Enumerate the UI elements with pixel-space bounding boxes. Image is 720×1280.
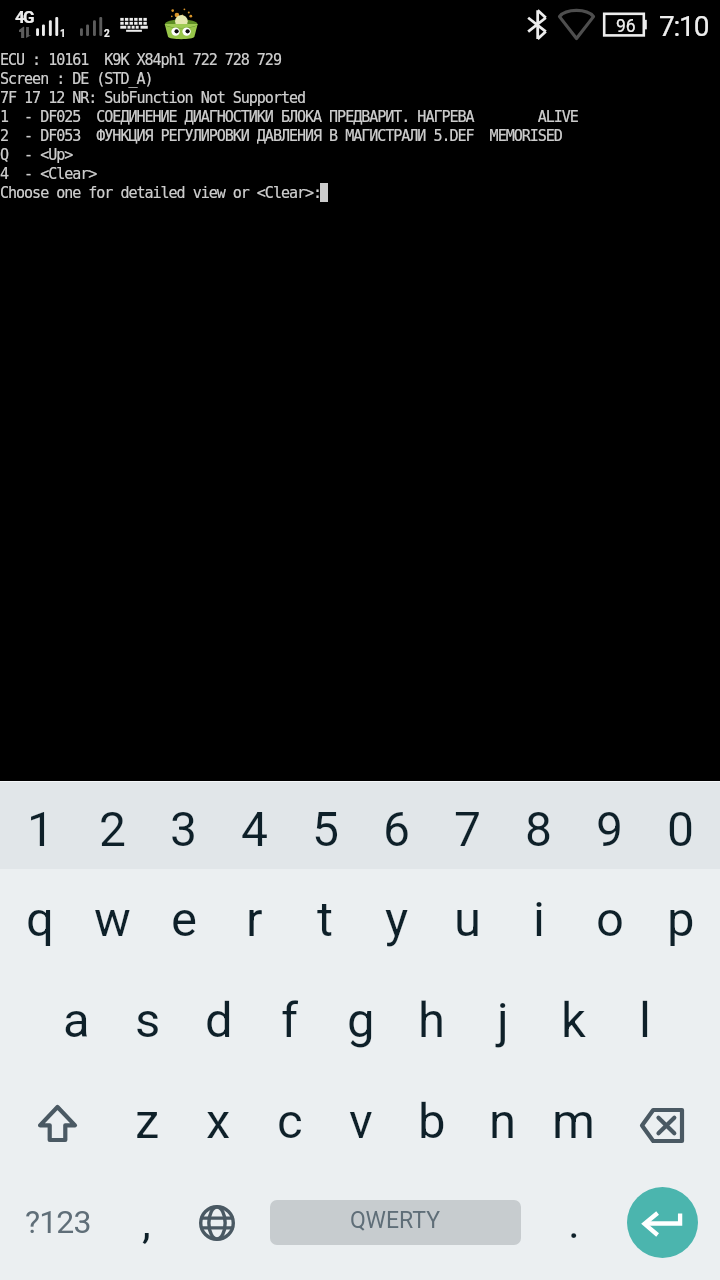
button[interactable]: Change language [182, 1172, 253, 1272]
button[interactable]: 8 [503, 782, 574, 869]
button[interactable]: t [290, 869, 361, 970]
staticText: w [94, 891, 131, 948]
staticText: 2 - DF053 ФУНКЦИЯ РЕГУЛИРОВКИ ДАВЛЕНИЯ В… [0, 127, 562, 145]
staticText: v [349, 1093, 373, 1150]
staticText: 2 [104, 28, 110, 40]
staticText: r [246, 891, 263, 948]
staticText: 8 [525, 801, 552, 857]
staticText: 6 [383, 801, 410, 857]
button[interactable]: . [538, 1172, 609, 1272]
button[interactable]: n [467, 1071, 538, 1172]
button[interactable]: h [396, 970, 467, 1071]
button[interactable]: Enter [609, 1172, 716, 1272]
staticText: ECU : 10161 K9K X84ph1 722 728 729 [0, 51, 281, 69]
staticText: 1 [60, 28, 66, 40]
staticText: n [489, 1093, 517, 1150]
button[interactable]: 9 [574, 782, 645, 869]
staticText: x [206, 1093, 231, 1150]
staticText: c [277, 1093, 303, 1150]
staticText: 7 [454, 801, 481, 857]
button[interactable]: b [396, 1071, 467, 1172]
button[interactable]: 3 [148, 782, 219, 869]
staticText: ?123 [25, 1203, 91, 1241]
button[interactable]: w [76, 869, 148, 970]
staticText: h [418, 992, 445, 1049]
staticText: 2 [99, 801, 126, 857]
button[interactable]: r [219, 869, 290, 970]
button[interactable]: v [325, 1071, 396, 1172]
staticText: 1 - DF025 СОЕДИНЕНИЕ ДИАГНОСТИКИ БЛОКА П… [0, 108, 578, 126]
staticText: 4 - <Clear> [0, 165, 97, 183]
button[interactable]: 1 [4, 782, 76, 869]
staticText: 3 [170, 801, 197, 857]
button[interactable]: k [538, 970, 609, 1071]
button[interactable]: 2 [76, 782, 148, 869]
button[interactable]: ?123 [4, 1172, 111, 1272]
button[interactable]: s [112, 970, 183, 1071]
staticText: 0 [667, 801, 694, 857]
button[interactable]: 5 [290, 782, 361, 869]
button[interactable]: j [467, 970, 538, 1071]
staticText: 7F 17 12 NR: SubFunction Not Supported [0, 89, 306, 107]
staticText: s [135, 992, 161, 1049]
staticText: y [385, 891, 409, 948]
button[interactable]: g [325, 970, 396, 1071]
staticText: f [281, 992, 299, 1049]
staticText: QWERTY [350, 1207, 441, 1234]
staticText: . [568, 1196, 580, 1249]
staticText: 5 [312, 801, 339, 857]
button[interactable]: y [361, 869, 432, 970]
button[interactable]: f [254, 970, 325, 1071]
button[interactable]: q [4, 869, 76, 970]
staticText: Screen : DE (STD_A) [0, 70, 153, 88]
staticText: j [497, 992, 509, 1049]
button[interactable]: 0 [645, 782, 716, 869]
button[interactable]: m [538, 1071, 609, 1172]
staticText: a [63, 992, 90, 1049]
button[interactable]: , [111, 1172, 182, 1272]
staticText: k [561, 992, 586, 1049]
staticText: 4G [15, 7, 33, 27]
staticText: i [533, 891, 545, 948]
button[interactable]: p [645, 869, 716, 970]
staticText: t [317, 891, 334, 948]
button[interactable]: QWERTY [253, 1172, 538, 1272]
staticText: l [639, 992, 651, 1049]
staticText: , [142, 1196, 151, 1249]
button[interactable]: Shift [4, 1071, 112, 1172]
button[interactable]: l [609, 970, 680, 1071]
button[interactable]: c [254, 1071, 325, 1172]
staticText: q [26, 891, 54, 948]
button[interactable]: z [112, 1071, 183, 1172]
button[interactable]: o [574, 869, 645, 970]
staticText: p [667, 891, 695, 948]
button[interactable]: u [432, 869, 503, 970]
button[interactable]: i [503, 869, 574, 970]
staticText: 96 [616, 16, 636, 37]
button[interactable]: x [183, 1071, 254, 1172]
staticText: e [171, 891, 197, 948]
button[interactable]: Backspace [609, 1071, 716, 1172]
staticText: u [454, 891, 482, 948]
staticText: g [347, 992, 375, 1049]
staticText: 7:10 [659, 10, 709, 43]
staticText: o [596, 891, 624, 948]
button[interactable]: 6 [361, 782, 432, 869]
staticText: d [205, 992, 233, 1049]
button[interactable]: a [41, 970, 112, 1071]
staticText: 1 [27, 801, 54, 857]
button[interactable]: 4 [219, 782, 290, 869]
staticText: z [135, 1093, 160, 1150]
button[interactable]: e [148, 869, 219, 970]
staticText: b [418, 1093, 446, 1150]
staticText: 9 [596, 801, 623, 857]
button[interactable]: 7 [432, 782, 503, 869]
staticText: 4 [241, 801, 268, 857]
button[interactable]: d [183, 970, 254, 1071]
staticText: Q - <Up> [0, 146, 73, 164]
staticText: Choose one for detailed view or <Clear>: [0, 184, 322, 202]
staticText: m [552, 1093, 595, 1150]
